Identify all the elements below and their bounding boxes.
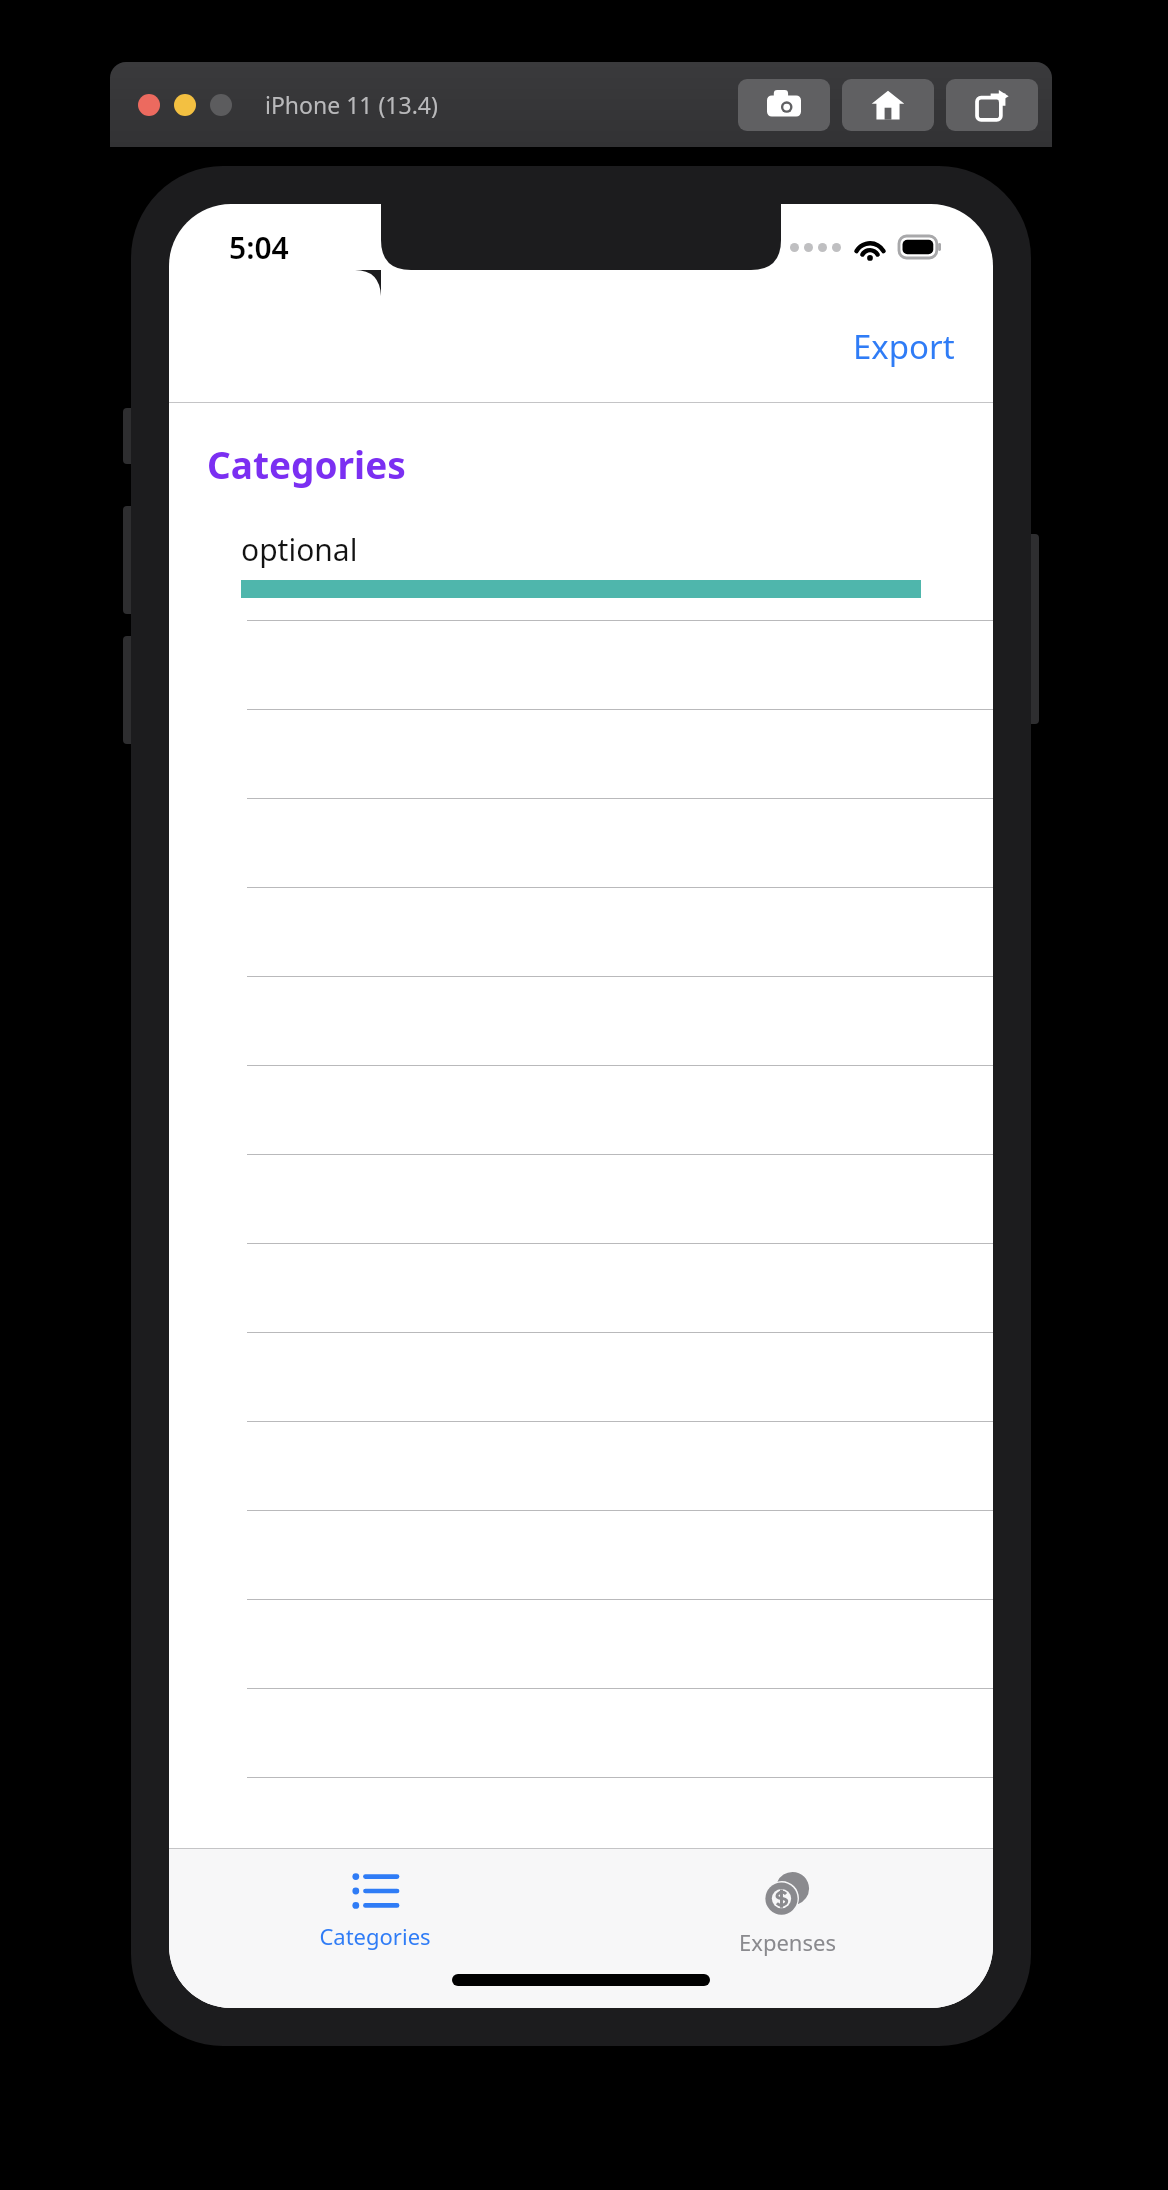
staticText: Export: [853, 324, 955, 369]
button[interactable]: Home: [842, 79, 934, 131]
button[interactable]: Rotate: [946, 79, 1038, 131]
button[interactable]: Zoom: [210, 94, 232, 116]
staticText: Categories: [319, 1921, 431, 1951]
button[interactable]: Screenshot: [738, 79, 830, 131]
staticText: Expenses: [739, 1927, 836, 1957]
staticText: Categories: [207, 439, 406, 489]
staticText: 5:04: [229, 227, 289, 268]
button[interactable]: Expenses: [581, 1865, 993, 1963]
button[interactable]: Minimize: [174, 94, 196, 116]
button[interactable]: Export: [843, 316, 965, 377]
staticText: optional: [241, 529, 358, 570]
button[interactable]: Close: [138, 94, 160, 116]
button[interactable]: Categories: [169, 1865, 581, 1957]
staticText: iPhone 11 (13.4): [265, 89, 438, 120]
